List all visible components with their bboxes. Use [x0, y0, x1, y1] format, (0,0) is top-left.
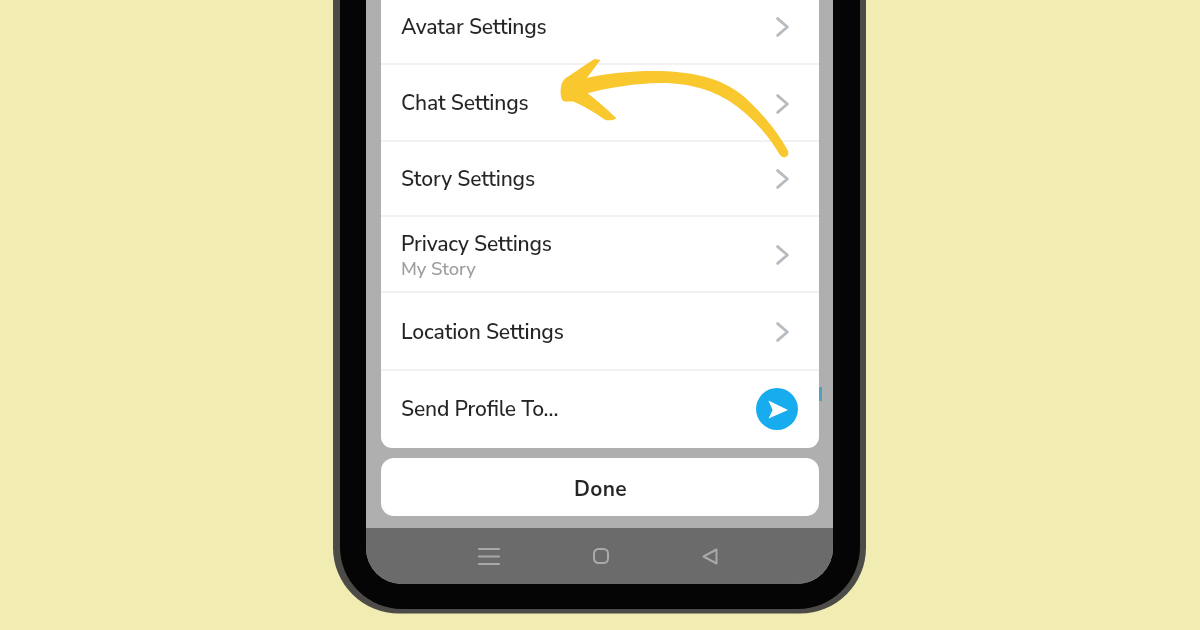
button[interactable]: Chat Settings — [381, 65, 819, 142]
button[interactable]: Done — [381, 458, 819, 516]
button[interactable]: Home — [579, 534, 623, 578]
staticText: Send Profile To… — [401, 395, 559, 424]
button[interactable]: Story Settings — [381, 141, 819, 217]
staticText: Chat Settings — [401, 89, 529, 118]
button[interactable]: Privacy Settings — [381, 217, 819, 293]
button[interactable]: Location Settings — [381, 293, 819, 371]
button[interactable]: Send profile to — [756, 388, 798, 430]
staticText: Avatar Settings — [401, 13, 547, 42]
staticText: Story Settings — [401, 165, 535, 194]
staticText: Done — [574, 475, 627, 504]
button[interactable]: Recent apps — [467, 534, 511, 578]
button[interactable]: Send Profile To… — [381, 371, 819, 448]
staticText: Location Settings — [401, 318, 564, 347]
staticText: My Story — [401, 256, 476, 281]
button[interactable]: Back — [688, 534, 732, 578]
button[interactable]: Avatar Settings — [381, 0, 819, 65]
staticText: Privacy Settings — [401, 230, 552, 259]
